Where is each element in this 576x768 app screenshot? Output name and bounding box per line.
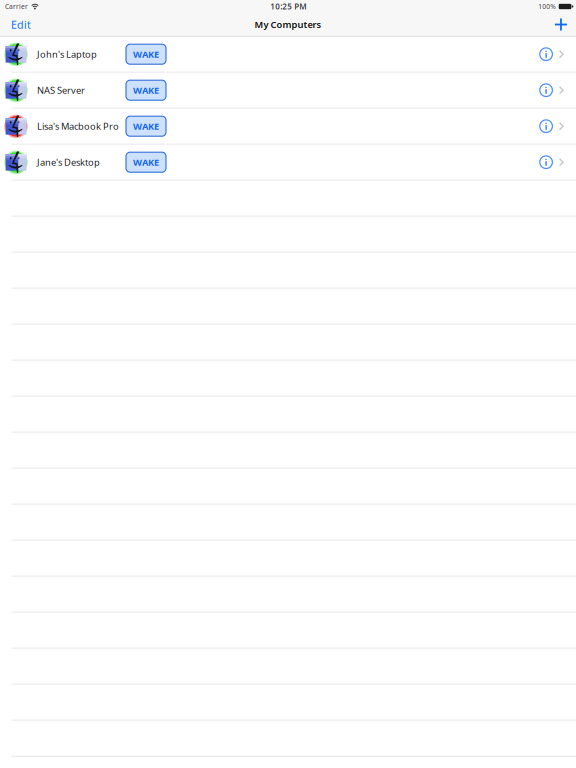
button[interactable]: Wake John's Laptop xyxy=(126,44,166,64)
button[interactable]: Details for Lisa's Macbook Pro xyxy=(539,109,553,144)
button[interactable]: NAS Server xyxy=(0,73,126,108)
staticText: WAKE xyxy=(133,120,159,132)
button[interactable]: Add computer xyxy=(545,13,576,36)
button[interactable]: John's Laptop xyxy=(0,37,126,72)
button[interactable]: Wake Jane's Desktop xyxy=(126,152,166,172)
button[interactable]: Wake Lisa's Macbook Pro xyxy=(126,116,166,136)
staticText: Lisa's Macbook Pro xyxy=(37,120,119,132)
button[interactable]: Details for Jane's Desktop xyxy=(539,145,553,180)
button[interactable]: Jane's Desktop xyxy=(0,145,126,180)
button[interactable]: Lisa's Macbook Pro xyxy=(0,109,126,144)
staticText: NAS Server xyxy=(37,84,85,96)
staticText: Carrier xyxy=(5,2,28,11)
staticText: Jane's Desktop xyxy=(37,156,100,168)
button[interactable]: Wake NAS Server xyxy=(126,80,166,100)
staticText: 100% xyxy=(538,2,556,11)
button[interactable]: Details for John's Laptop xyxy=(539,37,553,72)
staticText: Edit xyxy=(11,17,31,32)
staticText: WAKE xyxy=(133,156,159,168)
button[interactable]: Edit xyxy=(0,13,42,36)
button[interactable]: Details for NAS Server xyxy=(539,73,553,108)
staticText: My Computers xyxy=(254,18,321,31)
staticText: WAKE xyxy=(133,84,159,96)
staticText: John's Laptop xyxy=(37,48,97,60)
staticText: WAKE xyxy=(133,48,159,60)
staticText: 10:25 PM xyxy=(270,1,306,12)
